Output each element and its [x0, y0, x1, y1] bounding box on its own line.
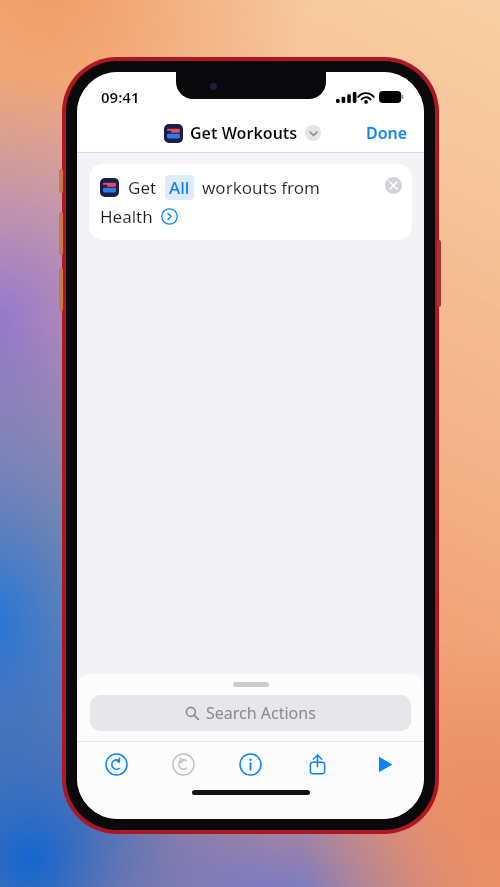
button[interactable]: Info [217, 742, 284, 786]
staticText: Get [128, 176, 157, 199]
button[interactable]: Undo [83, 742, 150, 786]
staticText: Done [366, 122, 408, 144]
button[interactable]: Redo [150, 742, 217, 786]
button[interactable]: Search Actions [90, 695, 411, 731]
staticText: All [169, 176, 190, 199]
button[interactable]: Remove action [385, 177, 402, 194]
button[interactable]: Shortcut options [305, 125, 321, 141]
button[interactable]: Share [284, 742, 351, 786]
button[interactable]: Run shortcut [351, 742, 418, 786]
staticText: Search Actions [206, 702, 316, 724]
button[interactable]: All [165, 175, 194, 200]
button[interactable]: Done [350, 116, 424, 150]
button[interactable]: Get [89, 164, 412, 240]
staticText: 09:41 [101, 87, 140, 107]
button[interactable]: Show details [161, 208, 178, 225]
staticText: Get Workouts [190, 122, 298, 144]
staticText: Health [100, 205, 153, 228]
staticText: workouts from [202, 176, 320, 199]
